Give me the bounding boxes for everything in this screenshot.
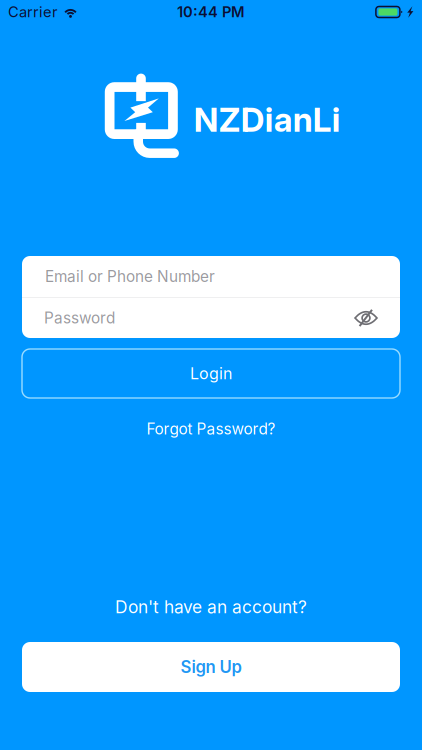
staticText: Don't have an account? (115, 596, 307, 617)
button[interactable]: Login (22, 349, 400, 398)
button[interactable]: Forgot Password? (131, 418, 291, 440)
staticText: NZDianLi (194, 99, 341, 140)
staticText: Email or Phone Number (45, 267, 215, 286)
staticText: Password (44, 309, 115, 327)
staticText: Carrier (8, 3, 58, 21)
button[interactable]: Sign Up (22, 642, 400, 692)
staticText: Forgot Password? (146, 420, 275, 438)
staticText: Login (190, 364, 232, 383)
staticText: Sign Up (180, 657, 241, 677)
button[interactable]: Show password (354, 309, 378, 326)
staticText: 10:44 PM (177, 3, 245, 21)
